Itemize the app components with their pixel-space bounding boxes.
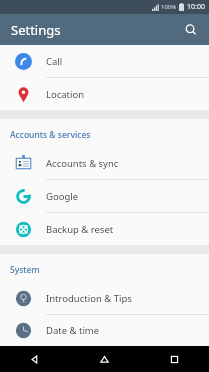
button[interactable]: Accounts & sync: [0, 147, 209, 180]
staticText: Location: [46, 88, 85, 101]
staticText: 10:00: [187, 2, 205, 12]
staticText: 100%: [161, 3, 177, 11]
button[interactable]: Call: [0, 45, 209, 78]
staticText: Accounts & sync: [46, 157, 119, 170]
button[interactable]: Back: [0, 346, 69, 372]
staticText: Settings: [11, 21, 61, 39]
button[interactable]: Date & time: [0, 315, 209, 346]
staticText: Call: [46, 55, 63, 68]
button[interactable]: Recent apps: [139, 346, 209, 372]
button[interactable]: Google: [0, 180, 209, 213]
button[interactable]: Location: [0, 78, 209, 110]
button[interactable]: Search: [178, 17, 204, 43]
staticText: Accounts & services: [10, 129, 209, 141]
staticText: Date & time: [46, 324, 100, 337]
button[interactable]: Backup & reset: [0, 213, 209, 245]
staticText: Backup & reset: [46, 223, 114, 236]
staticText: Google: [46, 190, 79, 203]
button[interactable]: Introduction & Tips: [0, 282, 209, 315]
staticText: Introduction & Tips: [46, 292, 132, 305]
button[interactable]: Home: [69, 346, 139, 372]
staticText: System: [10, 264, 209, 276]
